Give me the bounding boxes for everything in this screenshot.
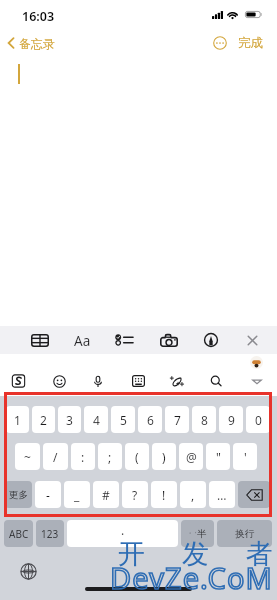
staticText: " <box>216 449 221 465</box>
button[interactable]: … <box>209 481 235 508</box>
staticText: / <box>53 449 58 465</box>
button[interactable]: 5 <box>111 406 135 433</box>
staticText: @ <box>186 449 197 465</box>
button[interactable]: Checklist <box>115 326 133 354</box>
staticText: 0 <box>255 412 262 428</box>
button[interactable]: Handwriting <box>170 374 183 388</box>
button[interactable]: 4 <box>84 406 108 433</box>
staticText: 开 发 者 <box>118 534 277 571</box>
button[interactable]: Sogou input <box>11 374 26 388</box>
button[interactable]: Close <box>246 326 259 354</box>
staticText: ! <box>162 487 166 503</box>
staticText: 更多 <box>9 489 28 501</box>
button[interactable]: , <box>180 481 206 508</box>
button[interactable]: Table <box>31 326 49 354</box>
button[interactable]: ? <box>122 481 148 508</box>
button[interactable]: Aa <box>72 326 92 354</box>
button[interactable]: 备忘录 <box>7 33 55 53</box>
button[interactable]: : <box>71 443 95 470</box>
button[interactable]: Markup <box>204 326 218 354</box>
button[interactable]: @ <box>179 443 203 470</box>
staticText: 完成 <box>238 35 263 51</box>
button[interactable]: 2 <box>32 406 55 433</box>
button[interactable]: ! <box>151 481 177 508</box>
staticText: _ <box>74 487 80 503</box>
staticText: 1 <box>14 412 21 428</box>
staticText: 3 <box>66 412 73 428</box>
staticText: … <box>217 487 227 503</box>
button[interactable]: - <box>35 481 61 508</box>
button[interactable]: ) <box>152 443 176 470</box>
staticText: 4 <box>93 412 100 428</box>
button[interactable]: Camera <box>160 326 178 354</box>
button[interactable]: Switch keyboard <box>20 563 37 580</box>
staticText: Aa <box>74 332 91 350</box>
staticText: - <box>46 487 50 503</box>
staticText: DevZe.CoM <box>110 558 274 597</box>
button[interactable]: ( <box>125 443 149 470</box>
staticText: ) <box>162 449 166 465</box>
staticText: · <box>121 526 125 542</box>
staticText: : <box>81 449 85 465</box>
staticText: ABC <box>9 527 29 541</box>
staticText: ? <box>132 487 138 503</box>
button[interactable]: 123 <box>36 520 64 547</box>
staticText: 7 <box>174 412 181 428</box>
button[interactable]: " <box>206 443 230 470</box>
button[interactable]: ' <box>233 443 257 470</box>
staticText: ( <box>135 449 139 465</box>
staticText: 123 <box>41 527 59 541</box>
button[interactable]: More options <box>213 36 227 50</box>
button[interactable]: # <box>93 481 119 508</box>
staticText: # <box>102 487 110 503</box>
staticText: , <box>191 487 195 503</box>
button[interactable]: 完成 <box>238 33 263 53</box>
staticText: 5 <box>120 412 127 428</box>
staticText: 2 <box>40 412 47 428</box>
button[interactable]: 1 <box>6 406 29 433</box>
staticText: 换行 <box>235 528 254 540</box>
button[interactable]: 0 <box>246 406 270 433</box>
button[interactable]: · <box>67 520 178 547</box>
button[interactable]: _ <box>64 481 90 508</box>
staticText: 9 <box>228 412 235 428</box>
button[interactable]: Delete <box>238 481 270 508</box>
staticText: 半 <box>197 528 207 540</box>
button[interactable]: ABC <box>4 520 33 547</box>
button[interactable]: 9 <box>219 406 243 433</box>
button[interactable]: Stickers <box>132 374 145 388</box>
staticText: ' <box>244 449 247 465</box>
button[interactable]: Search <box>210 374 222 388</box>
staticText: 6 <box>147 412 154 428</box>
button[interactable]: Voice input <box>91 374 105 388</box>
button[interactable]: ~ <box>15 443 40 470</box>
staticText: 8 <box>201 412 208 428</box>
staticText: 。, <box>189 527 197 535</box>
staticText: ; <box>108 449 112 465</box>
button[interactable]: 6 <box>138 406 162 433</box>
staticText: 备忘录 <box>19 36 55 51</box>
button[interactable]: Emoji <box>53 374 66 388</box>
button[interactable]: 3 <box>58 406 81 433</box>
staticText: 16:03 <box>22 8 55 25</box>
button[interactable]: 更多 <box>5 481 32 508</box>
button[interactable]: Hide keyboard <box>251 374 263 388</box>
button[interactable]: 换行 <box>217 520 272 547</box>
button[interactable]: 。, <box>181 520 214 547</box>
button[interactable]: ; <box>98 443 122 470</box>
button[interactable]: 8 <box>192 406 216 433</box>
button[interactable]: 7 <box>165 406 189 433</box>
staticText: ~ <box>24 449 31 465</box>
button[interactable]: / <box>43 443 68 470</box>
